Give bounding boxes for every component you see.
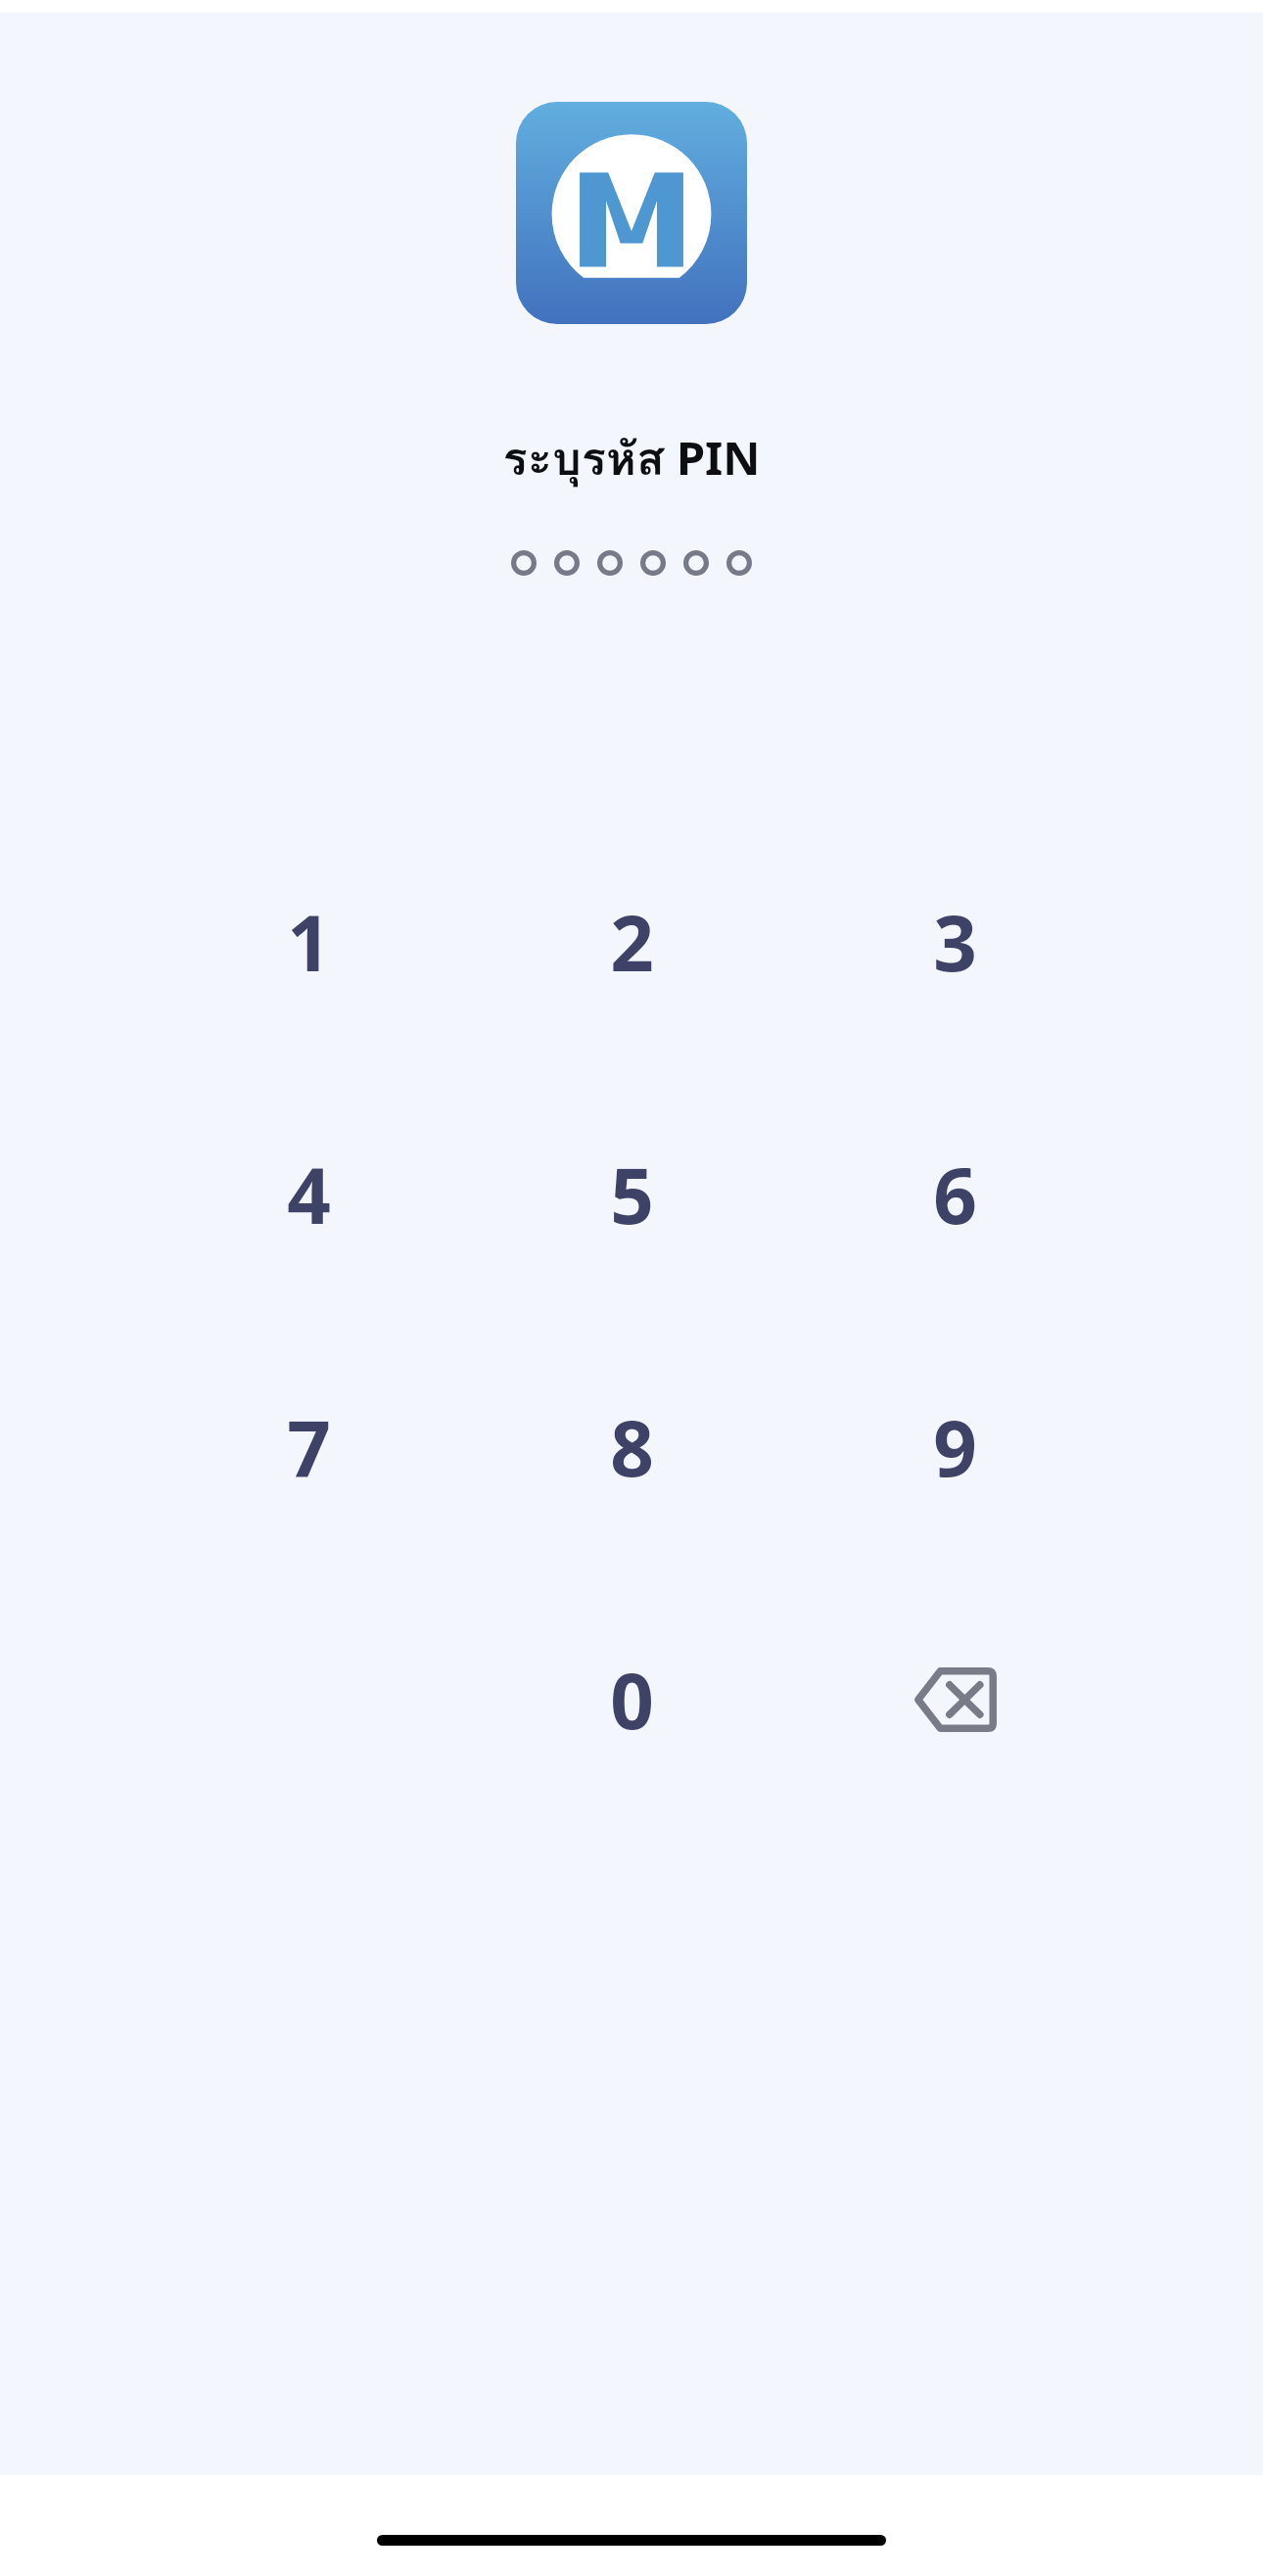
button[interactable]: Backspace: [744, 1573, 1165, 1826]
staticText: 9: [933, 1395, 977, 1499]
staticText: 8: [610, 1395, 654, 1499]
button[interactable]: 3: [744, 816, 1165, 1068]
staticText: ระบุรหัส PIN: [502, 422, 761, 495]
staticText: 3: [933, 890, 977, 994]
staticText: 7: [287, 1395, 331, 1499]
button[interactable]: 8: [421, 1321, 842, 1573]
staticText: 5: [610, 1143, 654, 1246]
button[interactable]: 1: [98, 816, 519, 1068]
staticText: 6: [933, 1143, 977, 1246]
staticText: 0: [610, 1648, 654, 1752]
staticText: 4: [287, 1143, 331, 1246]
button[interactable]: 2: [421, 816, 842, 1068]
staticText: 2: [610, 890, 654, 994]
button[interactable]: 0: [421, 1573, 842, 1826]
staticText: 1: [287, 890, 331, 994]
button[interactable]: 5: [421, 1068, 842, 1321]
button[interactable]: 4: [98, 1068, 519, 1321]
button[interactable]: 7: [98, 1321, 519, 1573]
button[interactable]: 9: [744, 1321, 1165, 1573]
button[interactable]: 6: [744, 1068, 1165, 1321]
